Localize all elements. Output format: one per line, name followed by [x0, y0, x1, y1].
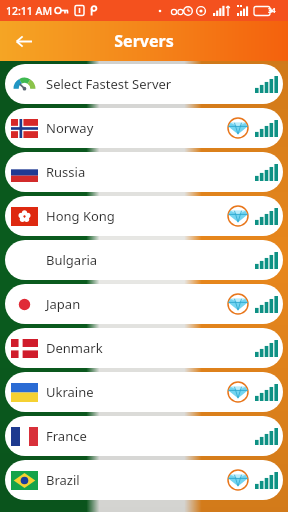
staticText: Denmark: [46, 339, 103, 357]
staticText: Select Fastest Server: [46, 75, 172, 93]
staticText: 12:11 AM: [6, 4, 53, 18]
other: Premium server: [227, 469, 249, 491]
staticText: Bulgaria: [46, 251, 98, 269]
button[interactable]: Norway: [5, 108, 283, 148]
staticText: Japan: [46, 295, 81, 313]
button[interactable]: Hong Kong: [5, 196, 283, 236]
button[interactable]: Ukraine: [5, 372, 283, 412]
button[interactable]: Back: [8, 26, 38, 56]
staticText: Norway: [46, 119, 94, 137]
button[interactable]: France: [5, 416, 283, 456]
staticText: Servers: [114, 30, 174, 52]
staticText: Hong Kong: [46, 207, 115, 225]
button[interactable]: Select Fastest Server: [5, 64, 283, 104]
other: Premium server: [227, 381, 249, 403]
other: Premium server: [227, 205, 249, 227]
staticText: France: [46, 427, 87, 445]
staticText: Brazil: [46, 471, 80, 489]
staticText: Russia: [46, 163, 86, 181]
other: Premium server: [227, 117, 249, 139]
button[interactable]: Brazil: [5, 460, 283, 500]
other: Premium server: [227, 293, 249, 315]
button[interactable]: Denmark: [5, 328, 283, 368]
staticText: 34: [268, 6, 276, 15]
staticText: Ukraine: [46, 383, 94, 401]
button[interactable]: Japan: [5, 284, 283, 324]
button[interactable]: Bulgaria: [5, 240, 283, 280]
button[interactable]: Russia: [5, 152, 283, 192]
